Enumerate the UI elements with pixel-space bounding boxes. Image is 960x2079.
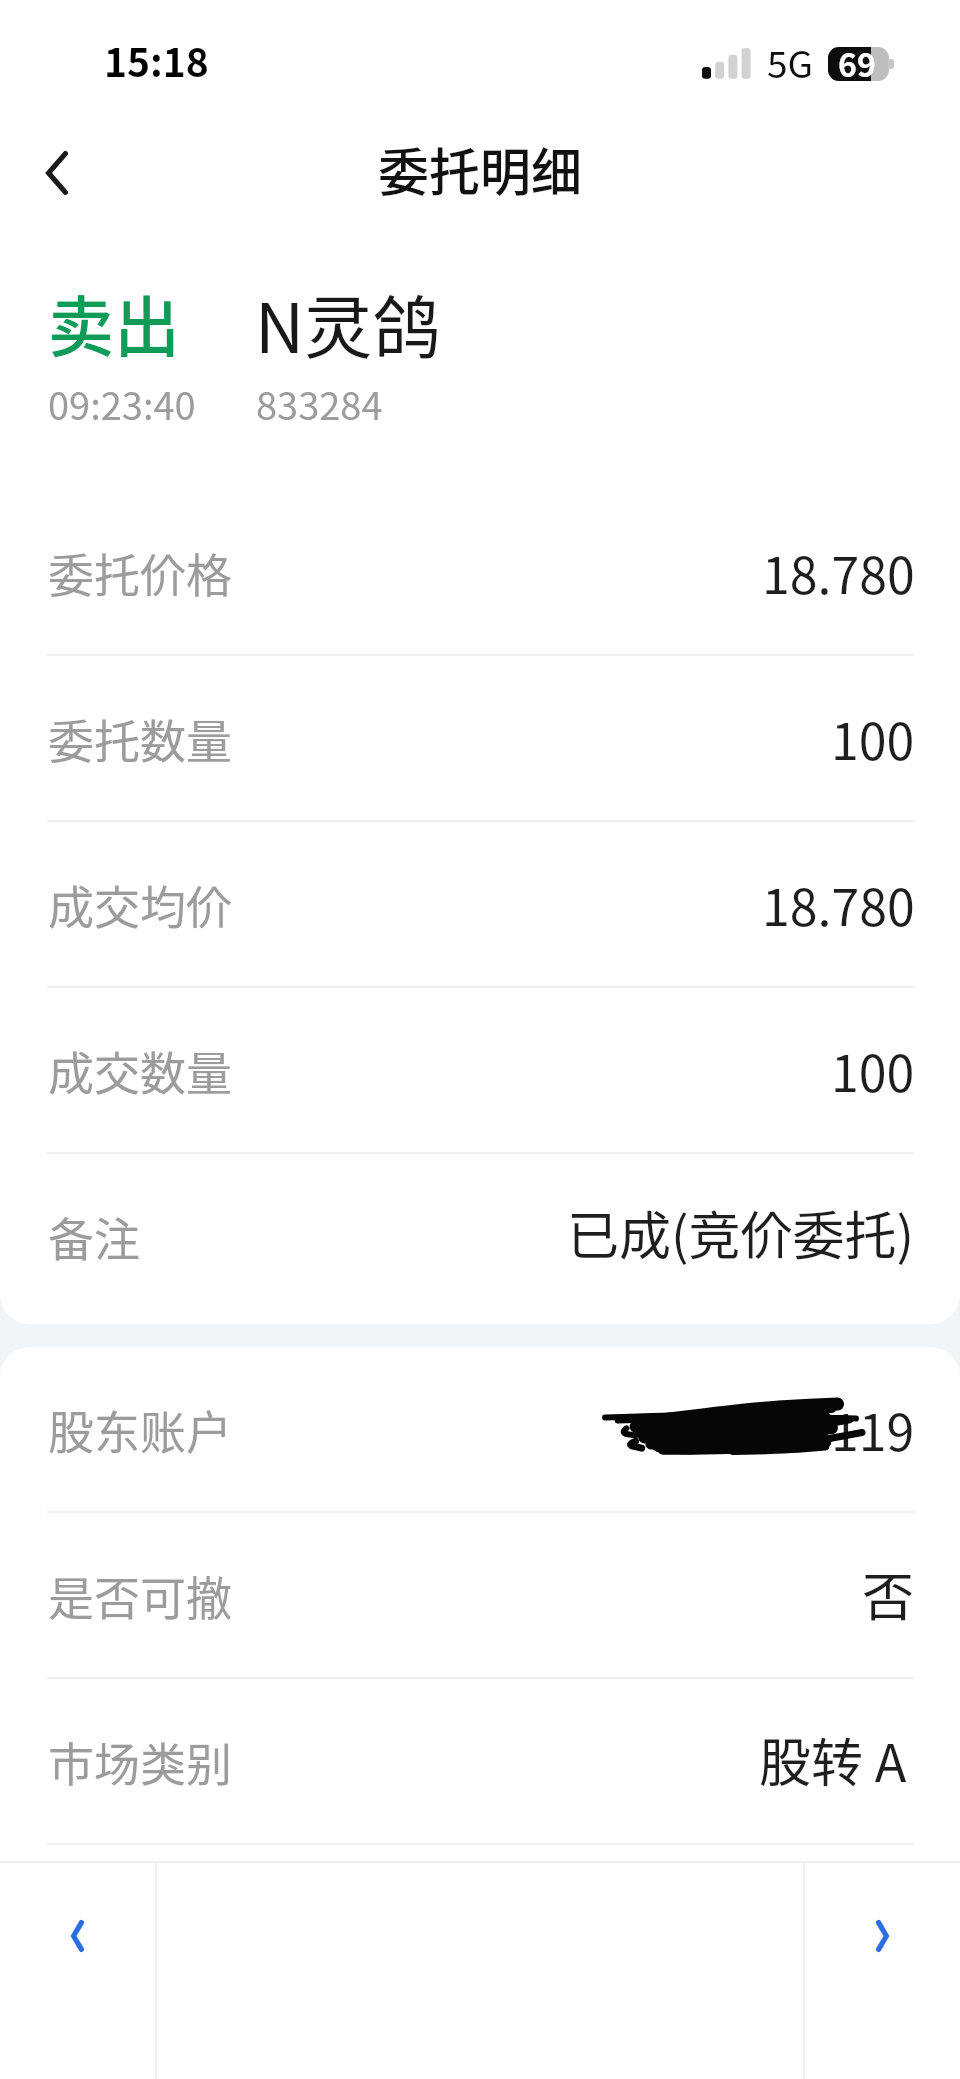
button[interactable]: 委托价格: [0, 490, 960, 656]
staticText: 5G: [767, 35, 814, 89]
button[interactable]: 股东账户: [0, 1347, 960, 1513]
button[interactable]: 市场类别: [0, 1679, 960, 1845]
button[interactable]: 是否可撤: [0, 1513, 960, 1679]
button[interactable]: Back: [0, 112, 112, 230]
button[interactable]: Next record: [805, 1863, 960, 2079]
staticText: 委托数量: [48, 705, 232, 772]
staticText: 69: [838, 40, 876, 86]
staticText: 市场类别: [48, 1728, 232, 1795]
staticText: 100: [831, 1034, 915, 1106]
staticText: 18.780: [762, 868, 915, 940]
button[interactable]: 委托数量: [0, 656, 960, 822]
staticText: 否: [862, 1556, 915, 1631]
staticText: 18.780: [762, 536, 915, 608]
staticText: N灵鸽: [255, 274, 441, 372]
staticText: 卖出: [48, 274, 180, 370]
staticText: 委托明细: [378, 132, 583, 206]
button[interactable]: 成交数量: [0, 988, 960, 1154]
staticText: 成交数量: [48, 1037, 232, 1104]
staticText: 119: [831, 1393, 915, 1465]
staticText: 833284: [256, 376, 383, 431]
staticText: 100: [831, 702, 915, 774]
staticText: 股转 A: [759, 1722, 907, 1797]
staticText: 09:23:40: [48, 376, 196, 431]
staticText: 委托价格: [48, 539, 232, 606]
button[interactable]: 备注: [0, 1154, 960, 1320]
staticText: 15:18: [104, 32, 209, 88]
staticText: 已成(竞价委托): [567, 1195, 915, 1270]
staticText: 股东账户: [48, 1396, 232, 1463]
staticText: 备注: [48, 1203, 140, 1270]
staticText: 成交均价: [48, 871, 232, 938]
button[interactable]: Previous record: [0, 1863, 155, 2079]
button[interactable]: 成交均价: [0, 822, 960, 988]
staticText: 是否可撤: [48, 1562, 232, 1629]
